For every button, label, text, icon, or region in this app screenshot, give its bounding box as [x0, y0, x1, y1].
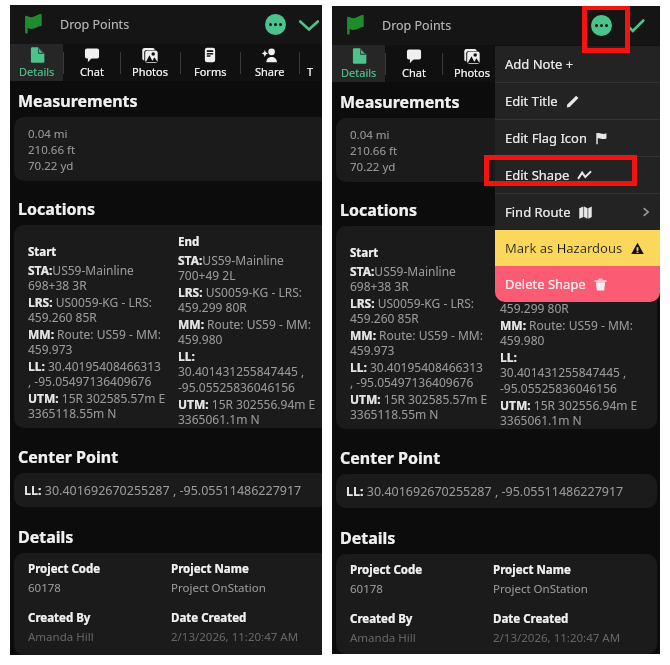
staticText: Locations — [340, 199, 417, 221]
staticText: Project Code — [28, 561, 101, 577]
staticText: LL: 30.40195408466313 , -95.054971364096… — [350, 359, 483, 391]
staticText: Mark as Hazardous — [505, 239, 623, 257]
staticText: LL: 30.401692670255287 , -95.05511486227… — [346, 483, 624, 500]
staticText: Edit Title — [505, 92, 558, 110]
button[interactable]: Add Note + — [495, 46, 660, 82]
staticText: Project Name — [493, 562, 571, 578]
button[interactable]: T — [299, 44, 322, 81]
button[interactable]: Find Route — [495, 194, 660, 230]
staticText: Add Note + — [505, 55, 574, 73]
staticText: LL: 30.401431255847445 , -95.05525836046… — [500, 349, 627, 397]
staticText: 0.04 mi — [28, 126, 68, 142]
staticText: Center Point — [340, 447, 441, 469]
button[interactable]: Edit Flag Icon — [495, 120, 660, 156]
staticText: Photos — [454, 65, 491, 80]
button[interactable]: Share — [240, 44, 299, 81]
staticText: Chat — [402, 65, 426, 80]
staticText: MM: Route: US59 - MM: 459.980 — [500, 317, 633, 349]
staticText: Project Code — [350, 562, 423, 578]
staticText: Created By — [350, 611, 413, 627]
staticText: Amanda Hill — [28, 629, 94, 645]
staticText: Measurements — [18, 90, 138, 112]
button[interactable]: Photos — [120, 44, 180, 81]
staticText: STA:US59-Mainline 700+49 2L — [500, 253, 606, 285]
button[interactable]: Photos — [442, 45, 502, 82]
staticText: Details — [340, 527, 396, 549]
staticText: End — [500, 235, 522, 251]
staticText: STA:US59-Mainline 698+38 3R — [28, 262, 134, 294]
staticText: MM: Route: US59 - MM: 459.973 — [350, 327, 483, 359]
button[interactable]: Collapse — [298, 14, 320, 36]
button[interactable]: Share — [562, 45, 621, 82]
staticText: Date Created — [171, 610, 247, 626]
button[interactable]: Edit Title — [495, 83, 660, 119]
button[interactable]: Edit Shape — [495, 157, 660, 193]
button[interactable]: Chat — [63, 44, 120, 81]
staticText: Date Created — [493, 611, 569, 627]
staticText: Delete Shape — [505, 275, 586, 293]
staticText: STA:US59-Mainline 700+49 2L — [178, 252, 284, 284]
staticText: T — [307, 64, 314, 79]
staticText: 70.22 yd — [28, 158, 74, 174]
staticText: 2/13/2026, 11:20:47 AM — [171, 629, 299, 645]
staticText: Center Point — [18, 446, 119, 468]
staticText: Amanda Hill — [350, 630, 416, 646]
staticText: 210.66 ft — [28, 142, 76, 158]
staticText: UTM: 15R 302556.94m E 3365061.1m N — [500, 397, 638, 429]
staticText: Forms — [516, 65, 549, 80]
staticText: LRS: US0059-KG - LRS: 459.260 85R — [28, 294, 152, 326]
staticText: 0.04 mi — [350, 127, 390, 143]
staticText: End — [178, 234, 200, 250]
staticText: Edit Shape — [505, 166, 570, 184]
staticText: Photos — [132, 64, 169, 79]
button[interactable]: Mark as Hazardous — [495, 230, 660, 266]
staticText: Measurements — [340, 91, 460, 113]
staticText: MM: Route: US59 - MM: 459.973 — [28, 326, 161, 358]
staticText: 210.66 ft — [350, 143, 398, 159]
staticText: Created By — [28, 610, 91, 626]
staticText: Details — [18, 526, 74, 548]
staticText: 2/13/2026, 11:20:47 AM — [493, 630, 621, 646]
button[interactable]: Forms — [180, 44, 240, 81]
staticText: Edit Flag Icon — [505, 129, 587, 147]
staticText: Share — [255, 64, 285, 79]
button[interactable]: More options — [265, 14, 286, 35]
button[interactable]: Chat — [385, 45, 442, 82]
staticText: Drop Points — [382, 17, 452, 34]
staticText: Forms — [194, 64, 227, 79]
staticText: Details — [19, 64, 55, 79]
staticText: UTM: 15R 302585.57m E 3365118.55m N — [350, 391, 488, 423]
staticText: 60178 — [350, 581, 383, 597]
staticText: LL: 30.401692670255287 , -95.05511486227… — [24, 482, 302, 499]
staticText: LL: 30.401431255847445 , -95.05525836046… — [178, 348, 305, 396]
staticText: STA:US59-Mainline 698+38 3R — [350, 263, 456, 295]
staticText: Start — [28, 244, 57, 260]
staticText: LRS: US0059-KG - LRS: 459.299 80R — [178, 284, 302, 316]
button[interactable]: Details — [332, 45, 385, 82]
staticText: Details — [341, 65, 377, 80]
staticText: Start — [350, 245, 379, 261]
staticText: Project Name — [171, 561, 249, 577]
button[interactable]: More options — [591, 15, 612, 36]
staticText: 60178 — [28, 580, 61, 596]
staticText: Drop Points — [60, 16, 130, 33]
staticText: Locations — [18, 198, 95, 220]
button[interactable]: T — [621, 45, 660, 82]
button[interactable]: Forms — [502, 45, 562, 82]
staticText: Chat — [80, 64, 104, 79]
staticText: LRS: US0059-KG - LRS: 459.299 80R — [500, 285, 624, 317]
staticText: MM: Route: US59 - MM: 459.980 — [178, 316, 311, 348]
staticText: 70.22 yd — [350, 159, 396, 175]
button[interactable]: Save — [624, 15, 646, 37]
staticText: Project OnStation — [493, 581, 588, 597]
staticText: Find Route — [505, 203, 571, 221]
button[interactable]: Details — [10, 44, 63, 81]
button[interactable]: Delete Shape — [495, 266, 660, 302]
staticText: UTM: 15R 302585.57m E 3365118.55m N — [28, 390, 166, 422]
staticText: UTM: 15R 302556.94m E 3365061.1m N — [178, 396, 316, 428]
staticText: LL: 30.40195408466313 , -95.054971364096… — [28, 358, 161, 390]
staticText: LRS: US0059-KG - LRS: 459.260 85R — [350, 295, 474, 327]
staticText: Project OnStation — [171, 580, 266, 596]
